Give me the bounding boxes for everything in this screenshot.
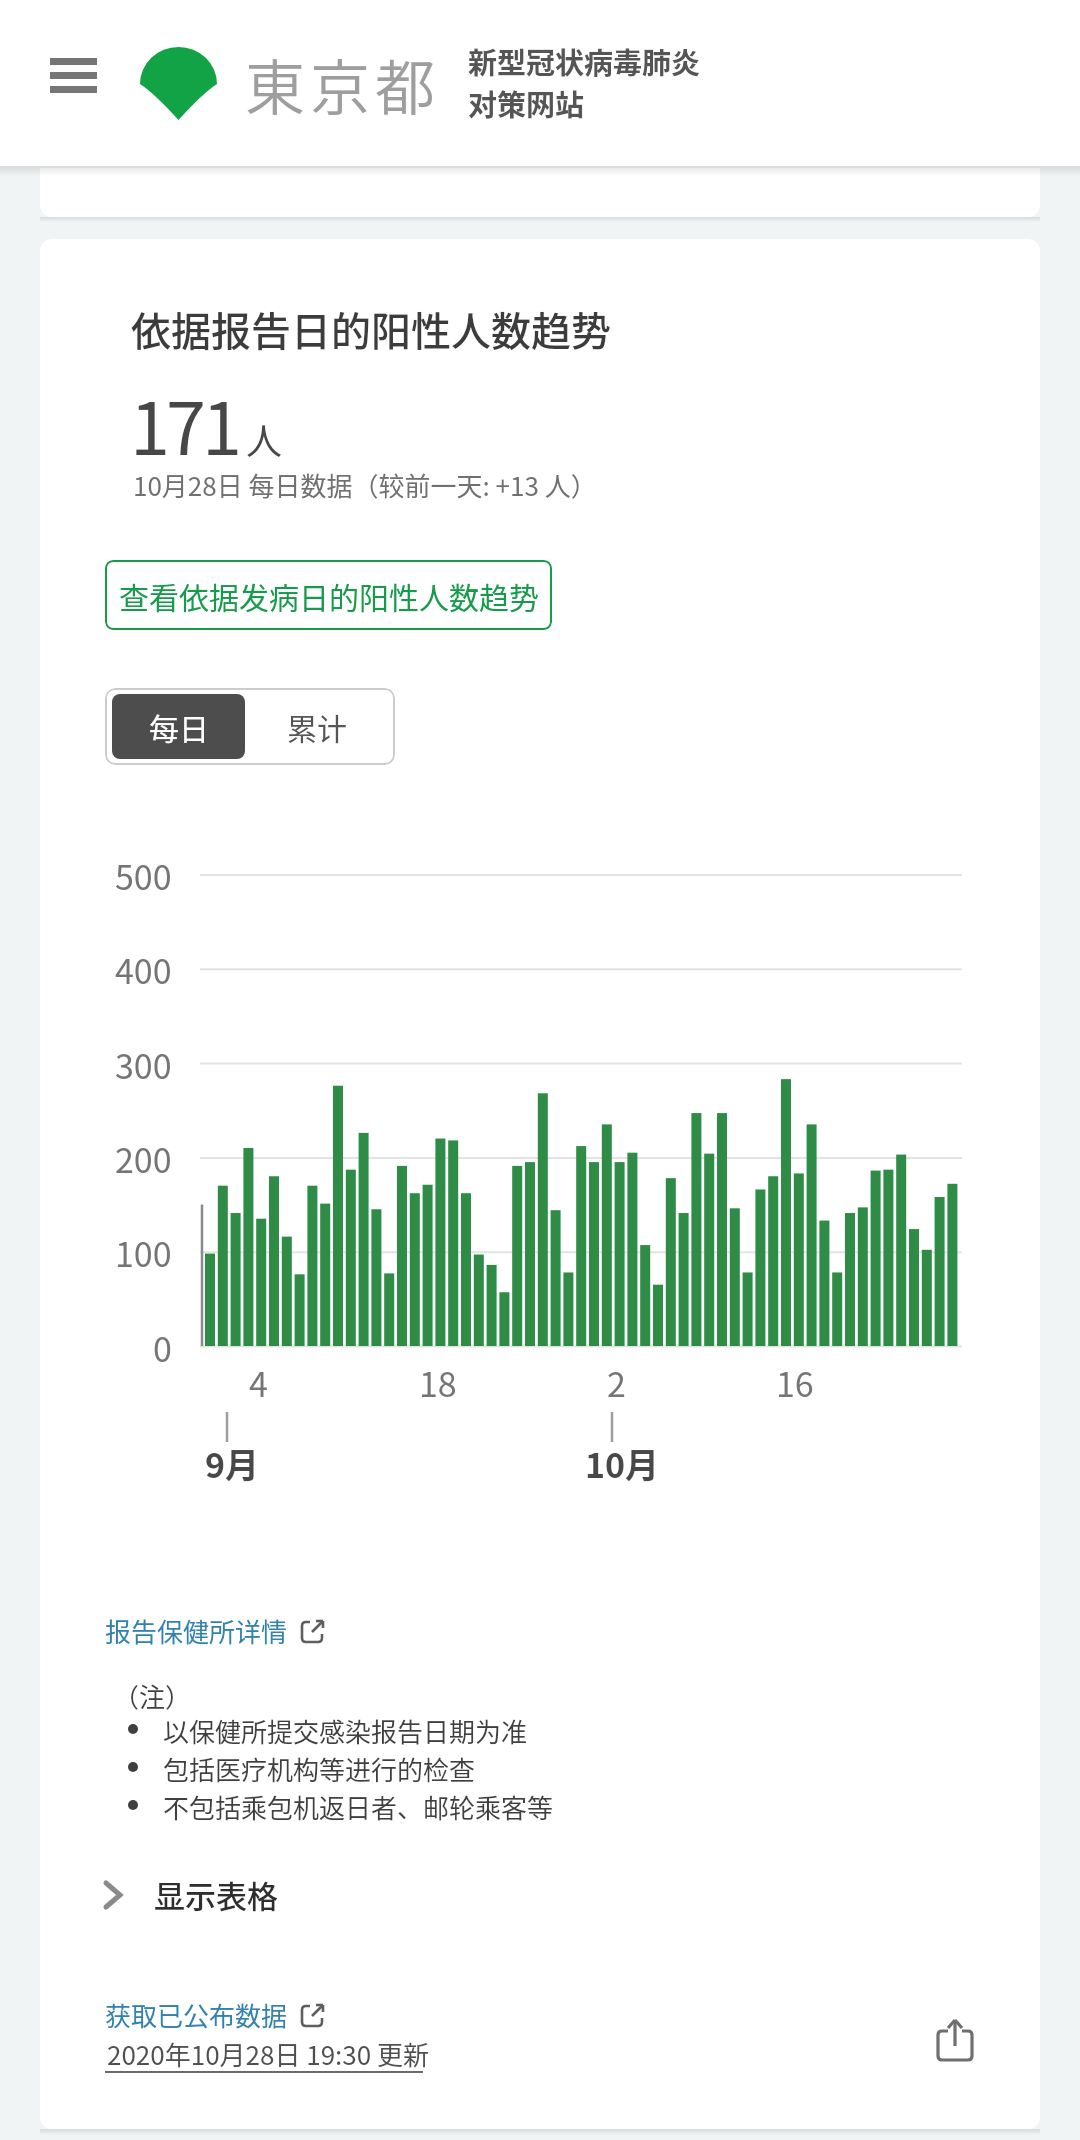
staticText: 不包括乘包机返日者、邮轮乘客等 bbox=[163, 1788, 554, 1826]
staticText: 每日 bbox=[149, 705, 209, 748]
staticText: 200 bbox=[115, 1134, 172, 1180]
button[interactable]: 查看依据发病日的阳性人数趋势 bbox=[105, 560, 552, 630]
staticText: 10月 bbox=[585, 1439, 660, 1488]
button[interactable]: 获取已公布数据 bbox=[105, 1996, 326, 2034]
button[interactable]: 每日 bbox=[112, 694, 245, 759]
staticText: 0 bbox=[153, 1323, 172, 1369]
staticText: 报告保健所详情 bbox=[105, 1612, 288, 1650]
staticText: 人 bbox=[246, 413, 283, 465]
staticText: 2 bbox=[607, 1358, 626, 1402]
staticText: 累计 bbox=[287, 705, 347, 748]
staticText: 对策网站 bbox=[468, 82, 585, 124]
staticText: （注） bbox=[113, 1677, 192, 1715]
staticText: 東京都 bbox=[245, 40, 440, 127]
staticText: 300 bbox=[115, 1040, 172, 1086]
staticText: 4 bbox=[249, 1358, 268, 1402]
staticText: 新型冠状病毒肺炎 bbox=[468, 40, 701, 82]
button[interactable]: 累计 bbox=[245, 694, 388, 759]
staticText: 以保健所提交感染报告日期为准 bbox=[163, 1712, 528, 1750]
button[interactable] bbox=[934, 2016, 980, 2064]
staticText: 18 bbox=[419, 1358, 457, 1402]
staticText: 10月28日 每日数据（较前一天: +13 人） bbox=[133, 466, 597, 504]
staticText: 包括医疗机构等进行的检查 bbox=[163, 1750, 476, 1788]
staticText: 查看依据发病日的阳性人数趋势 bbox=[119, 574, 539, 617]
staticText: 171 bbox=[130, 371, 238, 475]
staticText: 400 bbox=[115, 945, 172, 991]
staticText: 9月 bbox=[205, 1439, 260, 1488]
button[interactable]: 2020年10月28日 19:30 更新 bbox=[107, 2035, 430, 2073]
staticText: 依据报告日的阳性人数趋势 bbox=[131, 300, 611, 358]
button[interactable]: 显示表格 bbox=[100, 1872, 278, 1917]
staticText: 显示表格 bbox=[154, 1872, 278, 1917]
staticText: 100 bbox=[115, 1228, 172, 1274]
button[interactable]: 报告保健所详情 bbox=[105, 1612, 326, 1650]
staticText: 16 bbox=[776, 1358, 814, 1402]
staticText: 500 bbox=[115, 851, 172, 897]
staticText: 获取已公布数据 bbox=[105, 1996, 288, 2034]
button[interactable] bbox=[50, 58, 97, 96]
